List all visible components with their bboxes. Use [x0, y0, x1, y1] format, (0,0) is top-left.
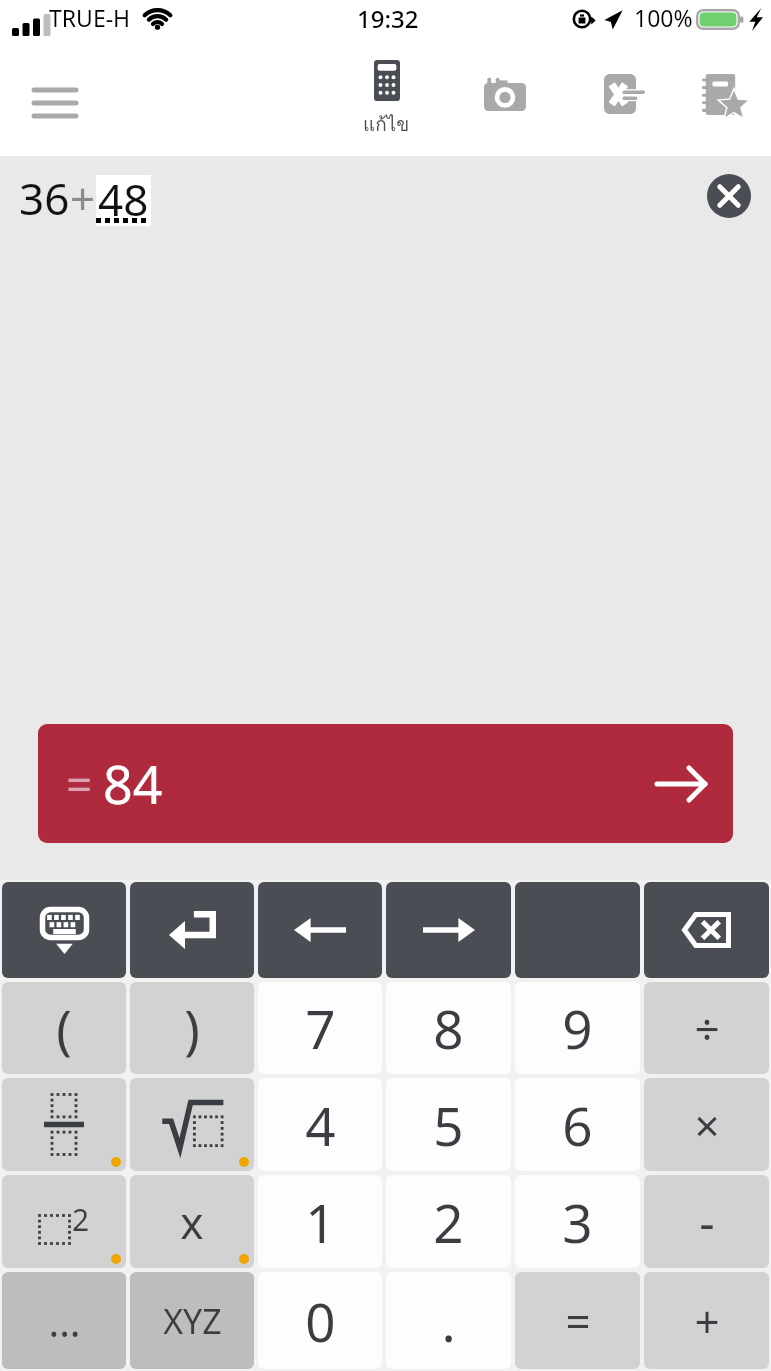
- button[interactable]: 9: [515, 982, 640, 1074]
- button[interactable]: 4: [258, 1078, 382, 1171]
- staticText: (: [56, 993, 72, 1064]
- button[interactable]: Right: [386, 882, 511, 978]
- button[interactable]: Camera: [455, 41, 555, 147]
- button[interactable]: 3: [515, 1175, 640, 1268]
- button[interactable]: .: [386, 1272, 511, 1369]
- staticText: 8: [433, 992, 464, 1064]
- staticText: TRUE-H: [49, 2, 131, 33]
- button[interactable]: ...: [2, 1272, 126, 1369]
- button[interactable]: =: [38, 724, 733, 843]
- button[interactable]: 8: [386, 982, 511, 1074]
- staticText: ): [184, 993, 200, 1064]
- staticText: 3: [562, 1186, 593, 1258]
- staticText: ...: [48, 1294, 81, 1348]
- staticText: 36: [19, 168, 70, 228]
- button[interactable]: Favorites: [675, 41, 771, 147]
- button[interactable]: +: [644, 1272, 769, 1369]
- staticText: -: [699, 1189, 715, 1254]
- button[interactable]: XYZ: [130, 1272, 254, 1369]
- staticText: 9: [562, 992, 593, 1064]
- button[interactable]: [515, 882, 640, 978]
- staticText: 19:32: [357, 2, 419, 35]
- staticText: 7: [305, 992, 336, 1064]
- staticText: 48: [98, 169, 149, 220]
- button[interactable]: [2, 1078, 126, 1171]
- button[interactable]: แก้ไข: [331, 50, 441, 156]
- button[interactable]: Hide keyboard: [2, 882, 126, 978]
- staticText: ×: [694, 1095, 720, 1155]
- staticText: 84: [103, 748, 163, 819]
- staticText: =: [66, 752, 93, 815]
- button[interactable]: 6: [515, 1078, 640, 1171]
- staticText: .: [441, 1285, 456, 1357]
- button[interactable]: 1: [258, 1175, 382, 1268]
- button[interactable]: Menu: [0, 50, 110, 156]
- button[interactable]: ×: [644, 1078, 769, 1171]
- staticText: 2: [72, 1199, 90, 1240]
- staticText: XYZ: [163, 1298, 222, 1344]
- staticText: 1: [305, 1186, 336, 1258]
- button[interactable]: x: [130, 1175, 254, 1268]
- button[interactable]: Enter: [130, 882, 254, 978]
- button[interactable]: -: [644, 1175, 769, 1268]
- staticText: ÷: [694, 998, 720, 1058]
- button[interactable]: 0: [258, 1272, 382, 1369]
- button[interactable]: Delete: [644, 882, 769, 978]
- button[interactable]: Clear: [701, 168, 757, 224]
- staticText: แก้ไข: [363, 109, 410, 139]
- staticText: +: [694, 1291, 720, 1351]
- staticText: 6: [562, 1089, 593, 1161]
- button[interactable]: ÷: [644, 982, 769, 1074]
- button[interactable]: (: [2, 982, 126, 1074]
- button[interactable]: 7: [258, 982, 382, 1074]
- staticText: =: [565, 1291, 591, 1351]
- button[interactable]: [130, 1078, 254, 1171]
- button[interactable]: 2: [2, 1175, 126, 1268]
- staticText: 100%: [634, 2, 693, 33]
- staticText: 2: [433, 1186, 464, 1258]
- button[interactable]: Left: [258, 882, 382, 978]
- staticText: 4: [305, 1089, 336, 1161]
- staticText: 5: [433, 1089, 464, 1161]
- button[interactable]: Solve: [574, 41, 674, 147]
- button[interactable]: =: [515, 1272, 640, 1369]
- button[interactable]: 5: [386, 1078, 511, 1171]
- staticText: +: [70, 168, 96, 228]
- button[interactable]: 2: [386, 1175, 511, 1268]
- button[interactable]: ): [130, 982, 254, 1074]
- staticText: 0: [305, 1285, 336, 1357]
- staticText: x: [180, 1192, 204, 1252]
